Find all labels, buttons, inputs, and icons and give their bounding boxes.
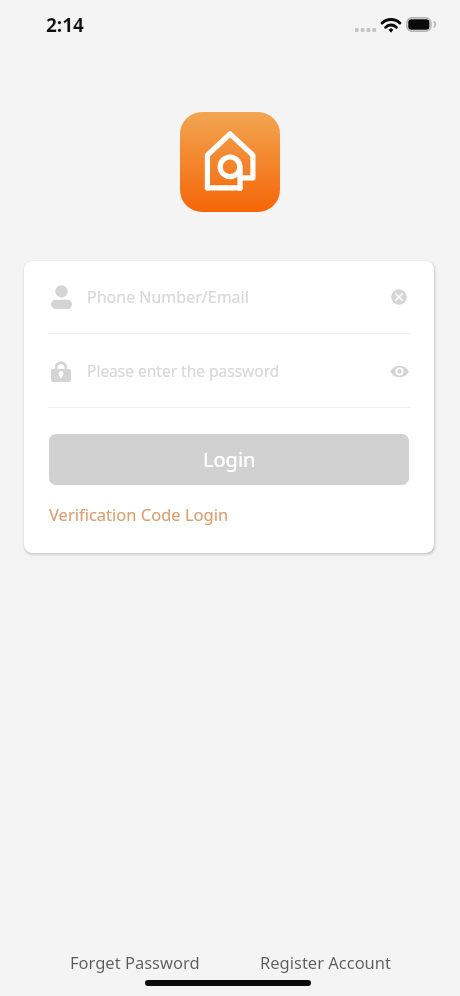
staticText: Register Account xyxy=(260,951,391,973)
staticText: Phone Number/Email xyxy=(87,286,249,308)
button[interactable]: Login xyxy=(49,434,409,485)
staticText: Forget Password xyxy=(70,951,200,973)
button[interactable]: Show password xyxy=(387,359,411,383)
button[interactable]: Clear xyxy=(387,285,411,309)
staticText: Login xyxy=(203,446,256,473)
button[interactable]: Register Account xyxy=(246,945,405,979)
staticText: 2:14 xyxy=(46,12,84,38)
button[interactable]: Forget Password xyxy=(56,945,214,979)
button[interactable]: Please enter the password xyxy=(24,334,434,407)
staticText: Verification Code Login xyxy=(49,503,229,525)
staticText: Please enter the password xyxy=(87,360,280,381)
button[interactable]: Verification Code Login xyxy=(49,498,229,530)
button[interactable]: Phone Number/Email xyxy=(24,261,434,333)
